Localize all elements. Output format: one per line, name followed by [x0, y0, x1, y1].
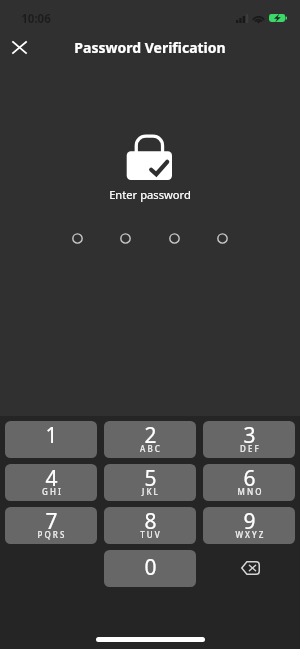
button[interactable]: 8: [104, 507, 196, 544]
staticText: 4: [45, 464, 58, 493]
staticText: Password Verification: [74, 38, 226, 57]
button[interactable]: 9: [203, 507, 295, 544]
staticText: Enter password: [109, 187, 191, 202]
staticText: 3: [243, 421, 256, 450]
button[interactable]: 1: [5, 421, 97, 458]
staticText: 9: [243, 507, 256, 536]
button[interactable]: 7: [5, 507, 97, 544]
button[interactable]: 4: [5, 464, 97, 501]
staticText: DEF: [240, 443, 261, 454]
staticText: MNO: [237, 486, 264, 497]
button[interactable]: 0: [104, 550, 196, 587]
staticText: 7: [45, 507, 58, 536]
staticText: 0: [144, 553, 157, 582]
staticText: 6: [243, 464, 256, 493]
staticText: 2: [144, 421, 157, 450]
staticText: PQRS: [37, 529, 67, 540]
button[interactable]: 3: [203, 421, 295, 458]
button[interactable]: Delete: [203, 550, 295, 587]
staticText: 8: [144, 507, 157, 536]
staticText: TUV: [140, 529, 162, 540]
button[interactable]: 6: [203, 464, 295, 501]
button[interactable]: Close: [1, 29, 38, 66]
button[interactable]: 5: [104, 464, 196, 501]
staticText: JKL: [142, 486, 160, 497]
staticText: GHI: [42, 486, 63, 497]
staticText: 10:06: [21, 11, 51, 27]
button[interactable]: 2: [104, 421, 196, 458]
staticText: WXYZ: [235, 529, 266, 540]
staticText: ABC: [140, 443, 162, 454]
staticText: 1: [45, 421, 58, 450]
staticText: 5: [144, 464, 157, 493]
